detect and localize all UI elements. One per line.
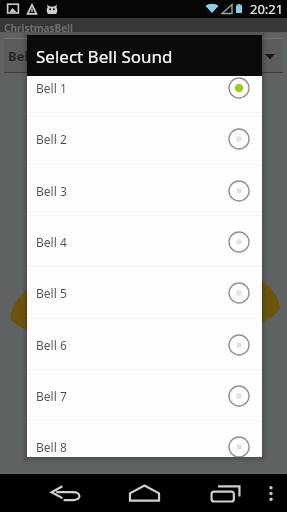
button[interactable]: Bell 4 (27, 216, 262, 267)
staticText: Bell 1 (8, 47, 43, 65)
button[interactable]: Home (108, 474, 180, 512)
button[interactable]: Bell 6 (27, 319, 262, 370)
button[interactable]: Bell 1 (27, 76, 262, 113)
button[interactable]: Bell 7 (27, 370, 262, 421)
staticText: Bell 1 (36, 80, 67, 96)
button[interactable]: Bell 2 (27, 113, 262, 164)
staticText: Bell 6 (36, 337, 67, 353)
staticText: Select Bell Sound (36, 45, 173, 68)
button[interactable]: Bell 8 (27, 421, 262, 457)
button[interactable]: Bell 5 (27, 267, 262, 318)
staticText: Bell 3 (36, 183, 67, 199)
button[interactable]: Bell 3 (27, 165, 262, 216)
staticText: Bell 5 (36, 285, 67, 301)
staticText: ChristmasBell (4, 21, 74, 35)
staticText: 20:21 (250, 0, 284, 18)
button[interactable]: More options (258, 474, 284, 512)
staticText: Bell 4 (36, 234, 67, 250)
staticText: Bell 2 (36, 131, 67, 147)
button[interactable]: Recent apps (190, 474, 260, 512)
staticText: Bell 8 (36, 439, 67, 455)
button[interactable]: Back (22, 474, 108, 512)
button[interactable]: Bell 1 (4, 38, 283, 73)
staticText: Bell 7 (36, 388, 67, 404)
